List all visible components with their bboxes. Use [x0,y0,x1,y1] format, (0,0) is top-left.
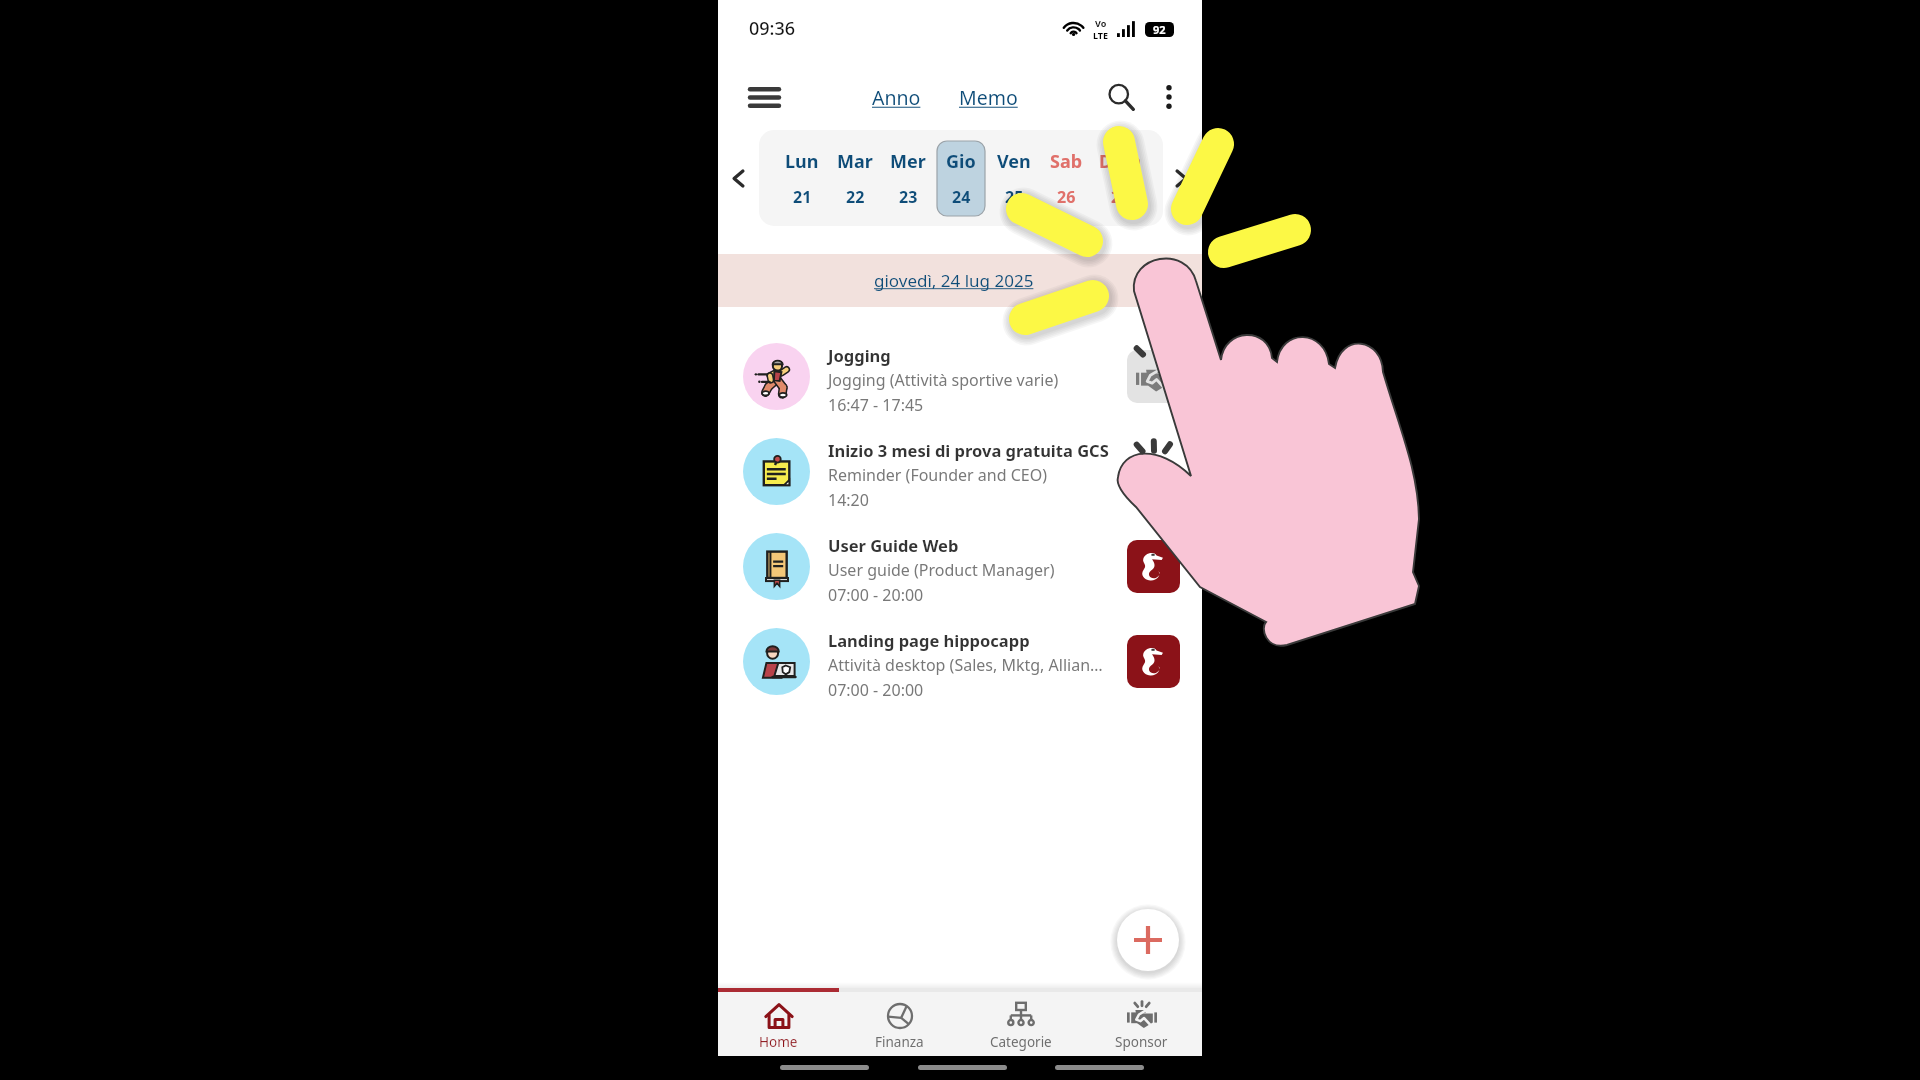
button[interactable]: Finanza [839,992,960,1056]
staticText: 07:00 - 20:00 [828,679,924,701]
button[interactable]: Ven [987,140,1040,216]
staticText: Mer [890,149,926,174]
button[interactable]: Landing page hippocapp [718,614,1202,709]
button[interactable]: Inizio 3 mesi di prova gratuita GCS [718,424,1202,519]
staticText: 23 [899,186,918,208]
staticText: Lun [785,149,819,174]
button[interactable]: Gio [934,140,987,216]
staticText: Attività desktop (Sales, Mktg, Allian… [828,654,1103,676]
staticText: Dom [1099,149,1141,174]
staticText: 25 [1005,186,1024,208]
staticText: Categorie [990,1033,1052,1051]
staticText: Sab [1050,149,1083,174]
staticText: Home [759,1033,798,1051]
staticText: Vo [1095,17,1107,29]
button[interactable]: Menu [742,75,786,119]
button[interactable]: Mar [828,140,881,216]
staticText: 27 [1111,186,1130,208]
staticText: 26 [1057,186,1076,208]
staticText: Inizio 3 mesi di prova gratuita GCS [828,439,1109,461]
button[interactable]: Home [718,992,839,1056]
button[interactable]: Categorie [960,992,1081,1056]
staticText: 14:20 [828,489,869,511]
staticText: 22 [846,186,865,208]
staticText: 92 [1153,22,1166,37]
button[interactable]: giovedì, 24 lug 2025 [718,254,1202,307]
staticText: giovedì, 24 lug 2025 [874,269,1034,292]
button[interactable]: User Guide Web [718,519,1202,614]
button[interactable]: Mer [881,140,934,216]
button[interactable]: Sponsor [1081,992,1202,1056]
staticText: 07:00 - 20:00 [828,584,924,606]
button[interactable]: Settimana successiva [1167,155,1196,201]
staticText: 09:36 [749,16,796,41]
staticText: 24 [952,186,971,208]
staticText: Finanza [875,1033,924,1051]
staticText: Gio [946,149,976,174]
button[interactable]: Memo [955,78,1022,117]
button[interactable]: Settimana precedente [724,155,753,201]
button[interactable]: Cerca [1098,74,1144,120]
button[interactable]: Dom [1093,140,1146,216]
button[interactable]: Sab [1040,140,1093,216]
staticText: Landing page hippocapp [828,629,1030,651]
staticText: User guide (Product Manager) [828,559,1055,581]
staticText: 16:47 - 17:45 [828,394,924,416]
staticText: LTE [1093,29,1109,41]
button[interactable]: Altre opzioni [1148,76,1190,118]
staticText: Memo [959,84,1018,111]
staticText: Jogging [828,344,891,366]
button[interactable]: Aggiungi evento [1117,909,1179,971]
staticText: Sponsor [1115,1033,1168,1051]
button[interactable]: Lun [775,140,828,216]
staticText: User Guide Web [828,534,959,556]
staticText: Reminder (Founder and CEO) [828,464,1047,486]
staticText: Anno [872,84,921,111]
button[interactable]: Anno [868,78,925,117]
staticText: Mar [837,149,873,174]
button[interactable]: Jogging [718,329,1202,424]
staticText: 21 [793,186,812,208]
staticText: Jogging (Attività sportive varie) [828,369,1059,391]
staticText: Ven [997,149,1031,174]
